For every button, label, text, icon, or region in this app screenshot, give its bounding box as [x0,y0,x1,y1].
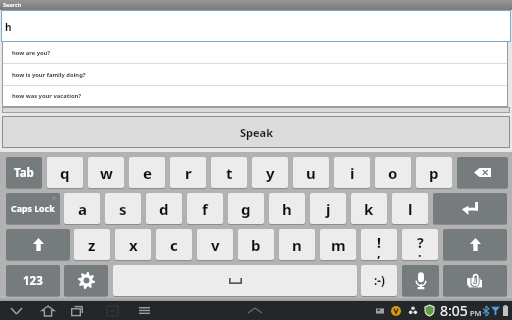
button[interactable]: :-) [361,265,397,296]
staticText: y [266,163,275,183]
staticText: l [408,199,413,219]
button[interactable]: Recents [66,301,88,320]
staticText: Caps Lock [11,203,55,215]
button[interactable]: Backspace [457,157,508,188]
staticText: r [185,163,192,183]
button[interactable]: z [74,229,110,260]
button[interactable]: Question mark [402,229,438,260]
staticText: h [5,20,12,34]
button[interactable]: Space [113,265,357,296]
staticText: s [119,199,127,219]
staticText: . [418,243,422,260]
staticText: d [159,199,169,219]
staticText: PM [470,308,482,318]
button[interactable]: Shift [6,229,70,260]
staticText: z [88,235,96,255]
staticText: n [292,235,302,255]
button[interactable]: i [334,157,370,188]
staticText: m [331,235,346,255]
staticText: c [170,235,178,255]
staticText: x [129,235,138,255]
staticText: f [202,199,208,219]
staticText: e [143,163,152,183]
button[interactable]: Expand [244,301,266,320]
staticText: w [100,163,113,183]
button[interactable]: m [320,229,356,260]
staticText: j [326,199,331,219]
staticText: , [377,243,381,260]
button[interactable]: h [1,10,511,42]
button[interactable]: h [269,193,305,224]
button[interactable]: Tab [6,157,42,188]
button[interactable]: w [88,157,124,188]
staticText: p [429,163,439,183]
button[interactable]: g [228,193,264,224]
button[interactable]: k [351,193,387,224]
staticText: i [350,163,355,183]
button[interactable]: c [156,229,192,260]
button[interactable]: Shift [443,229,507,260]
button[interactable]: how are you? [3,42,507,63]
staticText: ? [417,233,424,252]
button[interactable]: y [252,157,288,188]
staticText: how was your vacation? [12,92,82,100]
button[interactable]: n [279,229,315,260]
button[interactable]: Back [5,301,27,320]
staticText: g [241,199,251,219]
button[interactable]: p [416,157,452,188]
button[interactable]: how is your family doing? [3,64,507,85]
staticText: Tab [14,165,34,181]
staticText: h [282,199,292,219]
button[interactable]: Exclamation [361,229,397,260]
staticText: b [251,235,261,255]
button[interactable]: d [146,193,182,224]
staticText: 8:05 [440,301,468,320]
button[interactable]: f [187,193,223,224]
button[interactable]: Voice input [402,265,439,296]
staticText: ! [377,233,381,252]
staticText: a [78,199,87,219]
button[interactable]: a [64,193,100,224]
staticText: t [226,163,233,183]
button[interactable]: j [310,193,346,224]
staticText: how are you? [12,49,51,57]
button[interactable]: x [115,229,151,260]
staticText: Speak [240,125,273,140]
staticText: k [364,199,374,219]
button[interactable]: 123 [6,265,60,296]
staticText: u [306,163,316,183]
staticText: Search [3,1,22,8]
staticText: o [388,163,398,183]
button[interactable]: o [375,157,411,188]
button[interactable]: how was your vacation? [3,86,507,106]
button[interactable]: r [170,157,206,188]
button[interactable]: Home [37,301,59,320]
button[interactable]: b [238,229,274,260]
staticText: how is your family doing? [12,71,86,79]
button[interactable]: v [197,229,233,260]
button[interactable]: t [211,157,247,188]
staticText: q [60,163,70,183]
button[interactable]: Enter [433,193,507,224]
button[interactable]: Caps Lock [6,193,60,224]
button[interactable]: e [129,157,165,188]
button[interactable]: l [392,193,428,224]
button[interactable]: Attach [443,265,507,296]
staticText: 123 [23,273,43,289]
button[interactable]: u [293,157,329,188]
button[interactable]: q [47,157,83,188]
button[interactable]: Speak [2,116,510,148]
staticText: :-) [374,273,385,289]
button[interactable]: Screenshot [101,301,123,320]
button[interactable]: s [105,193,141,224]
button[interactable]: Settings [64,265,108,296]
button[interactable]: Menu [133,301,155,320]
staticText: v [211,235,220,255]
